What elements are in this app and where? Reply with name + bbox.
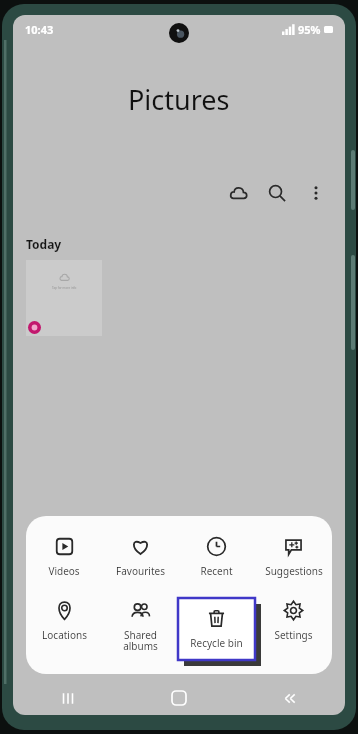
staticText: Shared albums [123,628,158,653]
button[interactable]: Videos [26,534,102,580]
button[interactable]: Favourites [102,534,178,580]
staticText: Recent [200,564,233,578]
staticText: Suggestions [265,564,323,578]
staticText: Videos [48,564,80,578]
staticText: Today [26,236,62,252]
staticText: Pictures [128,81,230,118]
staticText: Tap for more info [52,286,77,290]
staticText: Settings [274,628,313,642]
button[interactable]: Home [123,681,234,715]
button[interactable]: Photo thumbnail [26,260,102,336]
button[interactable]: Recents [13,681,123,715]
staticText: Favourites [116,564,165,578]
button[interactable]: Locations [26,598,102,644]
button[interactable]: Settings [255,598,332,644]
button[interactable]: Recent [178,534,255,580]
button[interactable]: More options [299,176,333,210]
staticText: Recycle bin [190,636,243,650]
button[interactable]: Back [234,681,345,715]
button[interactable]: Shared albums [102,598,178,655]
staticText: 10:43 [25,22,54,37]
button[interactable]: Recycle bin [178,598,255,660]
staticText: Locations [42,628,87,642]
staticText: 95% [298,22,321,37]
button[interactable]: Cloud sync [221,176,255,210]
button[interactable]: Suggestions [255,534,332,580]
button[interactable]: Search [260,176,294,210]
